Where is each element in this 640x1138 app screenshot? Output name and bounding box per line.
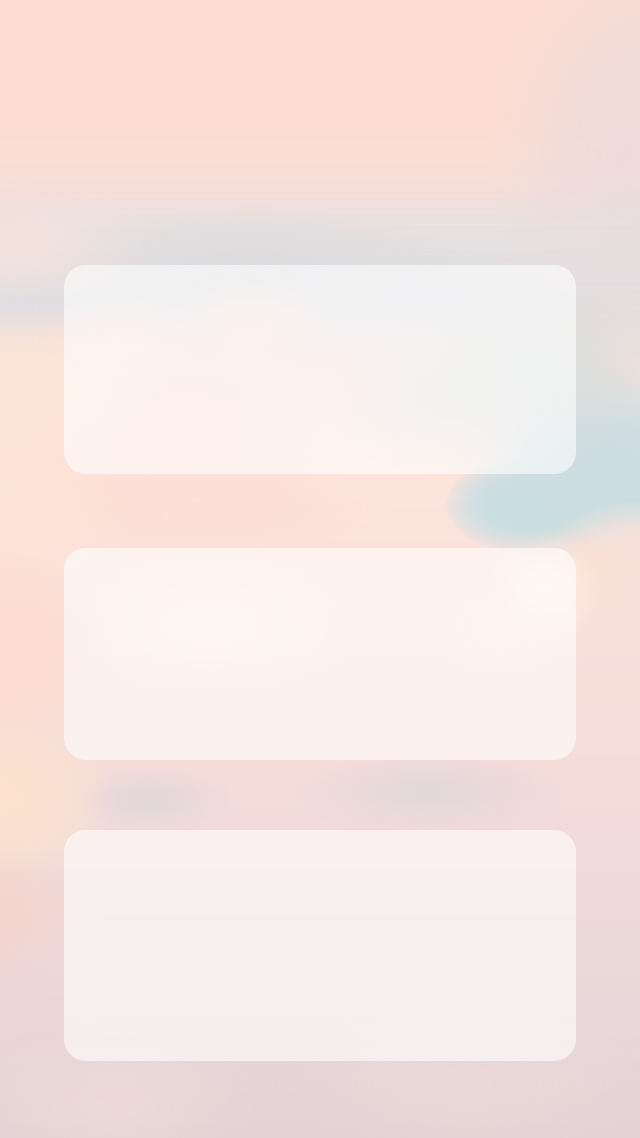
- button[interactable]: [64, 265, 576, 474]
